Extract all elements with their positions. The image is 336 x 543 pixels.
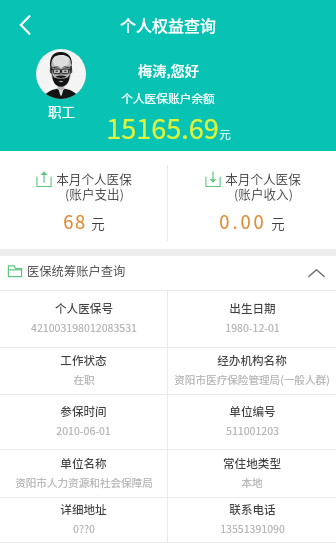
button[interactable]: 医保统筹账户查询 [0,256,336,290]
staticText: 单位名称 [60,455,107,472]
staticText: 在职 [73,372,95,387]
button[interactable]: 单位名称 [0,450,167,498]
staticText: 个人权益查询 [0,13,336,36]
button[interactable]: 经办机构名称 [168,348,336,395]
staticText: 联系电话 [229,501,276,518]
staticText: 元 [91,213,105,233]
staticText: 个人医保账户余额 [121,89,215,106]
button[interactable]: 工作状态 [0,348,167,395]
staticText: 421003198012083531 [31,320,137,335]
staticText: 详细地址 [60,501,107,518]
staticText: 1980-12-01 [225,320,280,335]
button[interactable]: 单位编号 [168,395,336,450]
staticText: 出生日期 [229,300,276,317]
button[interactable]: 个人医保号 [0,291,167,348]
staticText: 本地 [241,475,263,490]
staticText: 68 [63,208,87,234]
staticText: 梅涛,您好 [138,60,199,81]
button[interactable]: 常住地类型 [168,450,336,498]
staticText: 个人医保号 [55,300,113,317]
staticText: 参保时间 [60,403,107,420]
button[interactable]: 参保时间 [0,395,167,450]
staticText: (账户支出) [65,184,124,202]
staticText: 15165.69 [106,108,219,147]
staticText: 元 [219,126,231,143]
staticText: 本月个人医保 [225,169,301,187]
staticText: 工作状态 [60,352,107,369]
staticText: 资阳市人力资源和社会保障局 [15,475,153,490]
button[interactable]: 本月个人医保 [0,151,167,249]
button[interactable]: Collapse [301,258,331,288]
staticText: 常住地类型 [223,455,281,472]
staticText: 职工 [48,101,75,121]
staticText: 本月个人医保 [56,169,132,187]
button[interactable]: 本月个人医保 [168,151,336,249]
staticText: 0??0 [73,521,95,536]
staticText: 单位编号 [229,403,276,420]
staticText: 13551391090 [220,521,285,536]
button[interactable]: Back [8,8,42,42]
staticText: (账户收入) [234,184,293,202]
staticText: 医保统筹账户查询 [27,262,126,280]
staticText: 2010-06-01 [56,423,111,438]
staticText: 元 [271,213,285,233]
button[interactable]: 联系电话 [168,498,336,543]
button[interactable]: 出生日期 [168,291,336,348]
staticText: 经办机构名称 [217,352,287,369]
staticText: 0.00 [219,208,267,234]
staticText: 资阳市医疗保险管理局(一般人群) [174,372,330,387]
button[interactable]: 详细地址 [0,498,167,543]
staticText: 511001203 [226,423,279,438]
